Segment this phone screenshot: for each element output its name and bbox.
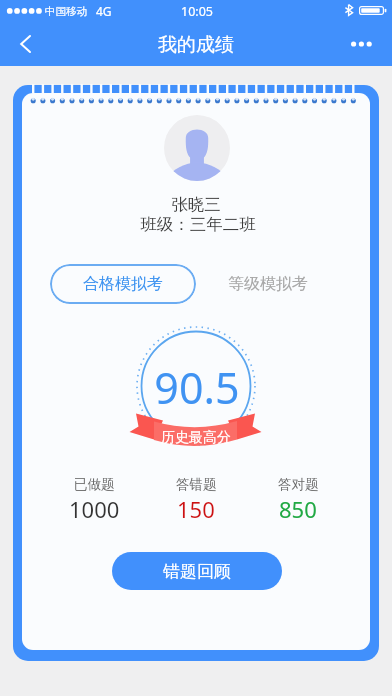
button[interactable]: 等级模拟考 xyxy=(213,264,323,304)
staticText: 答错题 xyxy=(176,476,217,493)
staticText: 中国移动 xyxy=(45,5,87,18)
staticText: 班级：三年二班 xyxy=(24,214,370,235)
button[interactable]: 合格模拟考 xyxy=(50,264,196,304)
staticText: 10:05 xyxy=(181,3,213,20)
staticText: 合格模拟考 xyxy=(83,274,163,294)
staticText: 4G xyxy=(96,3,112,19)
staticText: 历史最高分 xyxy=(161,429,231,447)
staticText: 850 xyxy=(279,494,317,524)
staticText: 张晓三 xyxy=(22,194,370,215)
button[interactable]: 错题回顾 xyxy=(112,552,282,590)
staticText: 等级模拟考 xyxy=(228,274,308,294)
staticText: 90.5 xyxy=(23,358,370,417)
button[interactable]: More options xyxy=(344,22,392,66)
staticText: 150 xyxy=(177,494,215,524)
staticText: 我的成绩 xyxy=(0,33,392,57)
staticText: 错题回顾 xyxy=(163,561,231,582)
staticText: 1000 xyxy=(69,494,120,524)
staticText: 答对题 xyxy=(278,476,319,493)
button[interactable]: Back xyxy=(0,22,50,66)
staticText: 已做题 xyxy=(74,476,115,493)
